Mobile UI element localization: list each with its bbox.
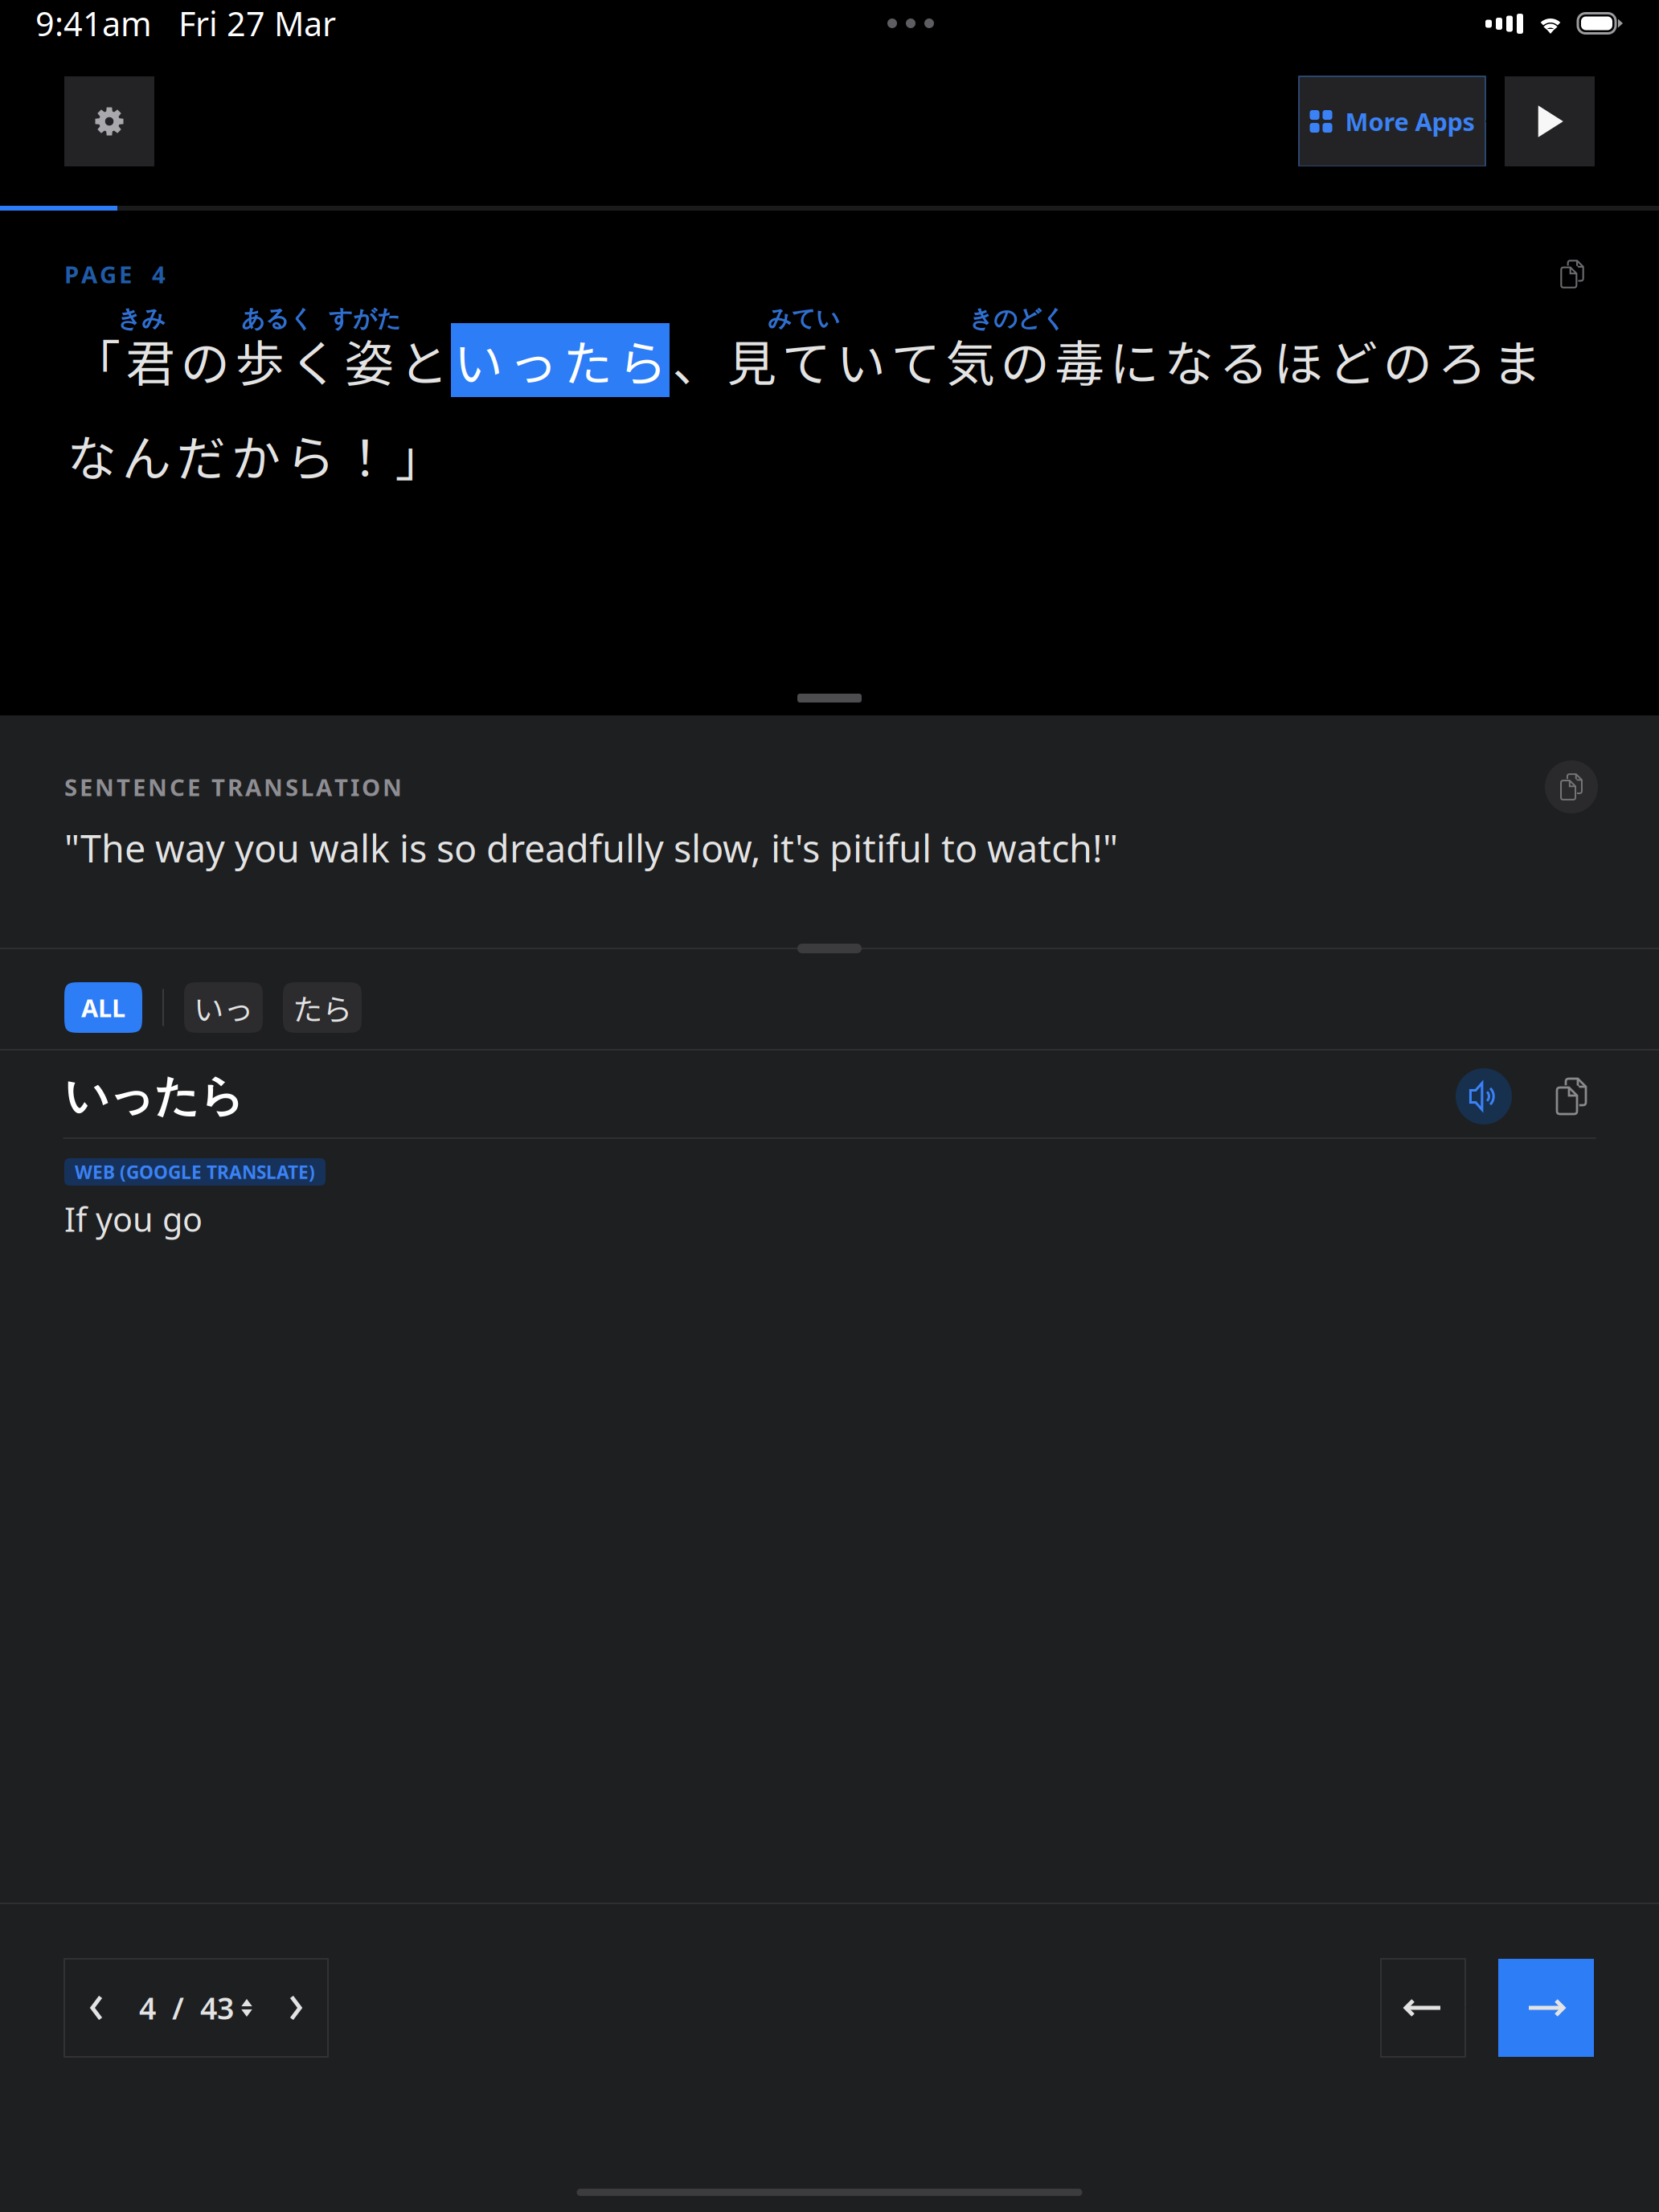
staticText: と xyxy=(399,324,448,396)
staticText: 」 xyxy=(395,419,444,491)
staticText: S E N T E N C E T R A N S L A T I O N xyxy=(64,771,402,803)
staticText: い xyxy=(454,324,503,396)
button[interactable]: Next page xyxy=(264,1959,328,2057)
button[interactable]: Back xyxy=(1381,1959,1465,2057)
staticText: 姿 xyxy=(344,324,393,396)
staticText: な xyxy=(67,419,116,491)
staticText: く xyxy=(290,324,339,396)
staticText: 4 / 43 xyxy=(139,1988,234,2028)
staticText: きのどく xyxy=(969,304,1066,334)
staticText: あるく xyxy=(241,304,313,334)
staticText: たら xyxy=(293,986,352,1029)
staticText: ま xyxy=(1492,324,1541,396)
staticText: て xyxy=(782,324,831,396)
staticText: ALL xyxy=(81,991,125,1024)
staticText: る xyxy=(1219,324,1268,396)
staticText: の xyxy=(1000,324,1049,396)
button[interactable]: Copy sentence xyxy=(1546,248,1598,300)
staticText: みてい xyxy=(768,304,840,334)
button[interactable]: たら xyxy=(283,982,362,1033)
staticText: て xyxy=(891,324,940,396)
staticText: ほ xyxy=(1274,324,1323,396)
staticText: "The way you walk is so dreadfully slow,… xyxy=(64,823,1118,873)
button[interactable]: Copy word xyxy=(1543,1068,1600,1124)
staticText: い xyxy=(836,324,885,396)
staticText: ど xyxy=(1328,324,1377,396)
staticText: か xyxy=(231,419,280,491)
button[interactable]: Copy translation xyxy=(1545,760,1598,813)
staticText: の xyxy=(1383,324,1432,396)
staticText: きみ xyxy=(117,304,166,334)
staticText: な xyxy=(1164,324,1213,396)
staticText: 見 xyxy=(727,324,776,396)
staticText: If you go xyxy=(64,1197,203,1241)
staticText: 毒 xyxy=(1055,324,1104,396)
staticText: だ xyxy=(176,419,225,491)
staticText: ん xyxy=(122,419,171,491)
staticText: っ xyxy=(508,324,557,396)
staticText: ！ xyxy=(340,419,389,491)
staticText: すがた xyxy=(329,304,401,334)
button[interactable]: More Apps xyxy=(1299,76,1485,166)
staticText: ろ xyxy=(1438,324,1487,396)
staticText: More Apps xyxy=(1345,105,1475,138)
staticText: 、 xyxy=(672,324,721,396)
staticText: いったら xyxy=(64,1069,244,1124)
staticText: ら xyxy=(286,419,335,491)
staticText: 君 xyxy=(126,324,175,396)
button[interactable]: Settings xyxy=(64,76,154,166)
button[interactable]: Play xyxy=(1505,76,1595,166)
staticText: いっ xyxy=(194,986,253,1029)
staticText: の xyxy=(180,324,229,396)
button[interactable]: Forward xyxy=(1498,1959,1594,2057)
staticText: た xyxy=(563,324,612,396)
staticText: 「 xyxy=(71,324,120,396)
button[interactable]: Previous page xyxy=(64,1959,129,2057)
staticText: WEB (GOOGLE TRANSLATE) xyxy=(75,1160,315,1184)
staticText: ら xyxy=(618,324,667,396)
button[interactable]: Play pronunciation xyxy=(1456,1068,1512,1124)
button[interactable]: いっ xyxy=(184,982,263,1033)
staticText: 9:41am Fri 27 Mar xyxy=(35,1,336,45)
staticText: 気 xyxy=(946,324,995,396)
button[interactable]: ALL xyxy=(64,982,142,1033)
staticText: 歩 xyxy=(235,324,284,396)
staticText: P A G E 4 xyxy=(64,258,166,290)
staticText: に xyxy=(1110,324,1159,396)
